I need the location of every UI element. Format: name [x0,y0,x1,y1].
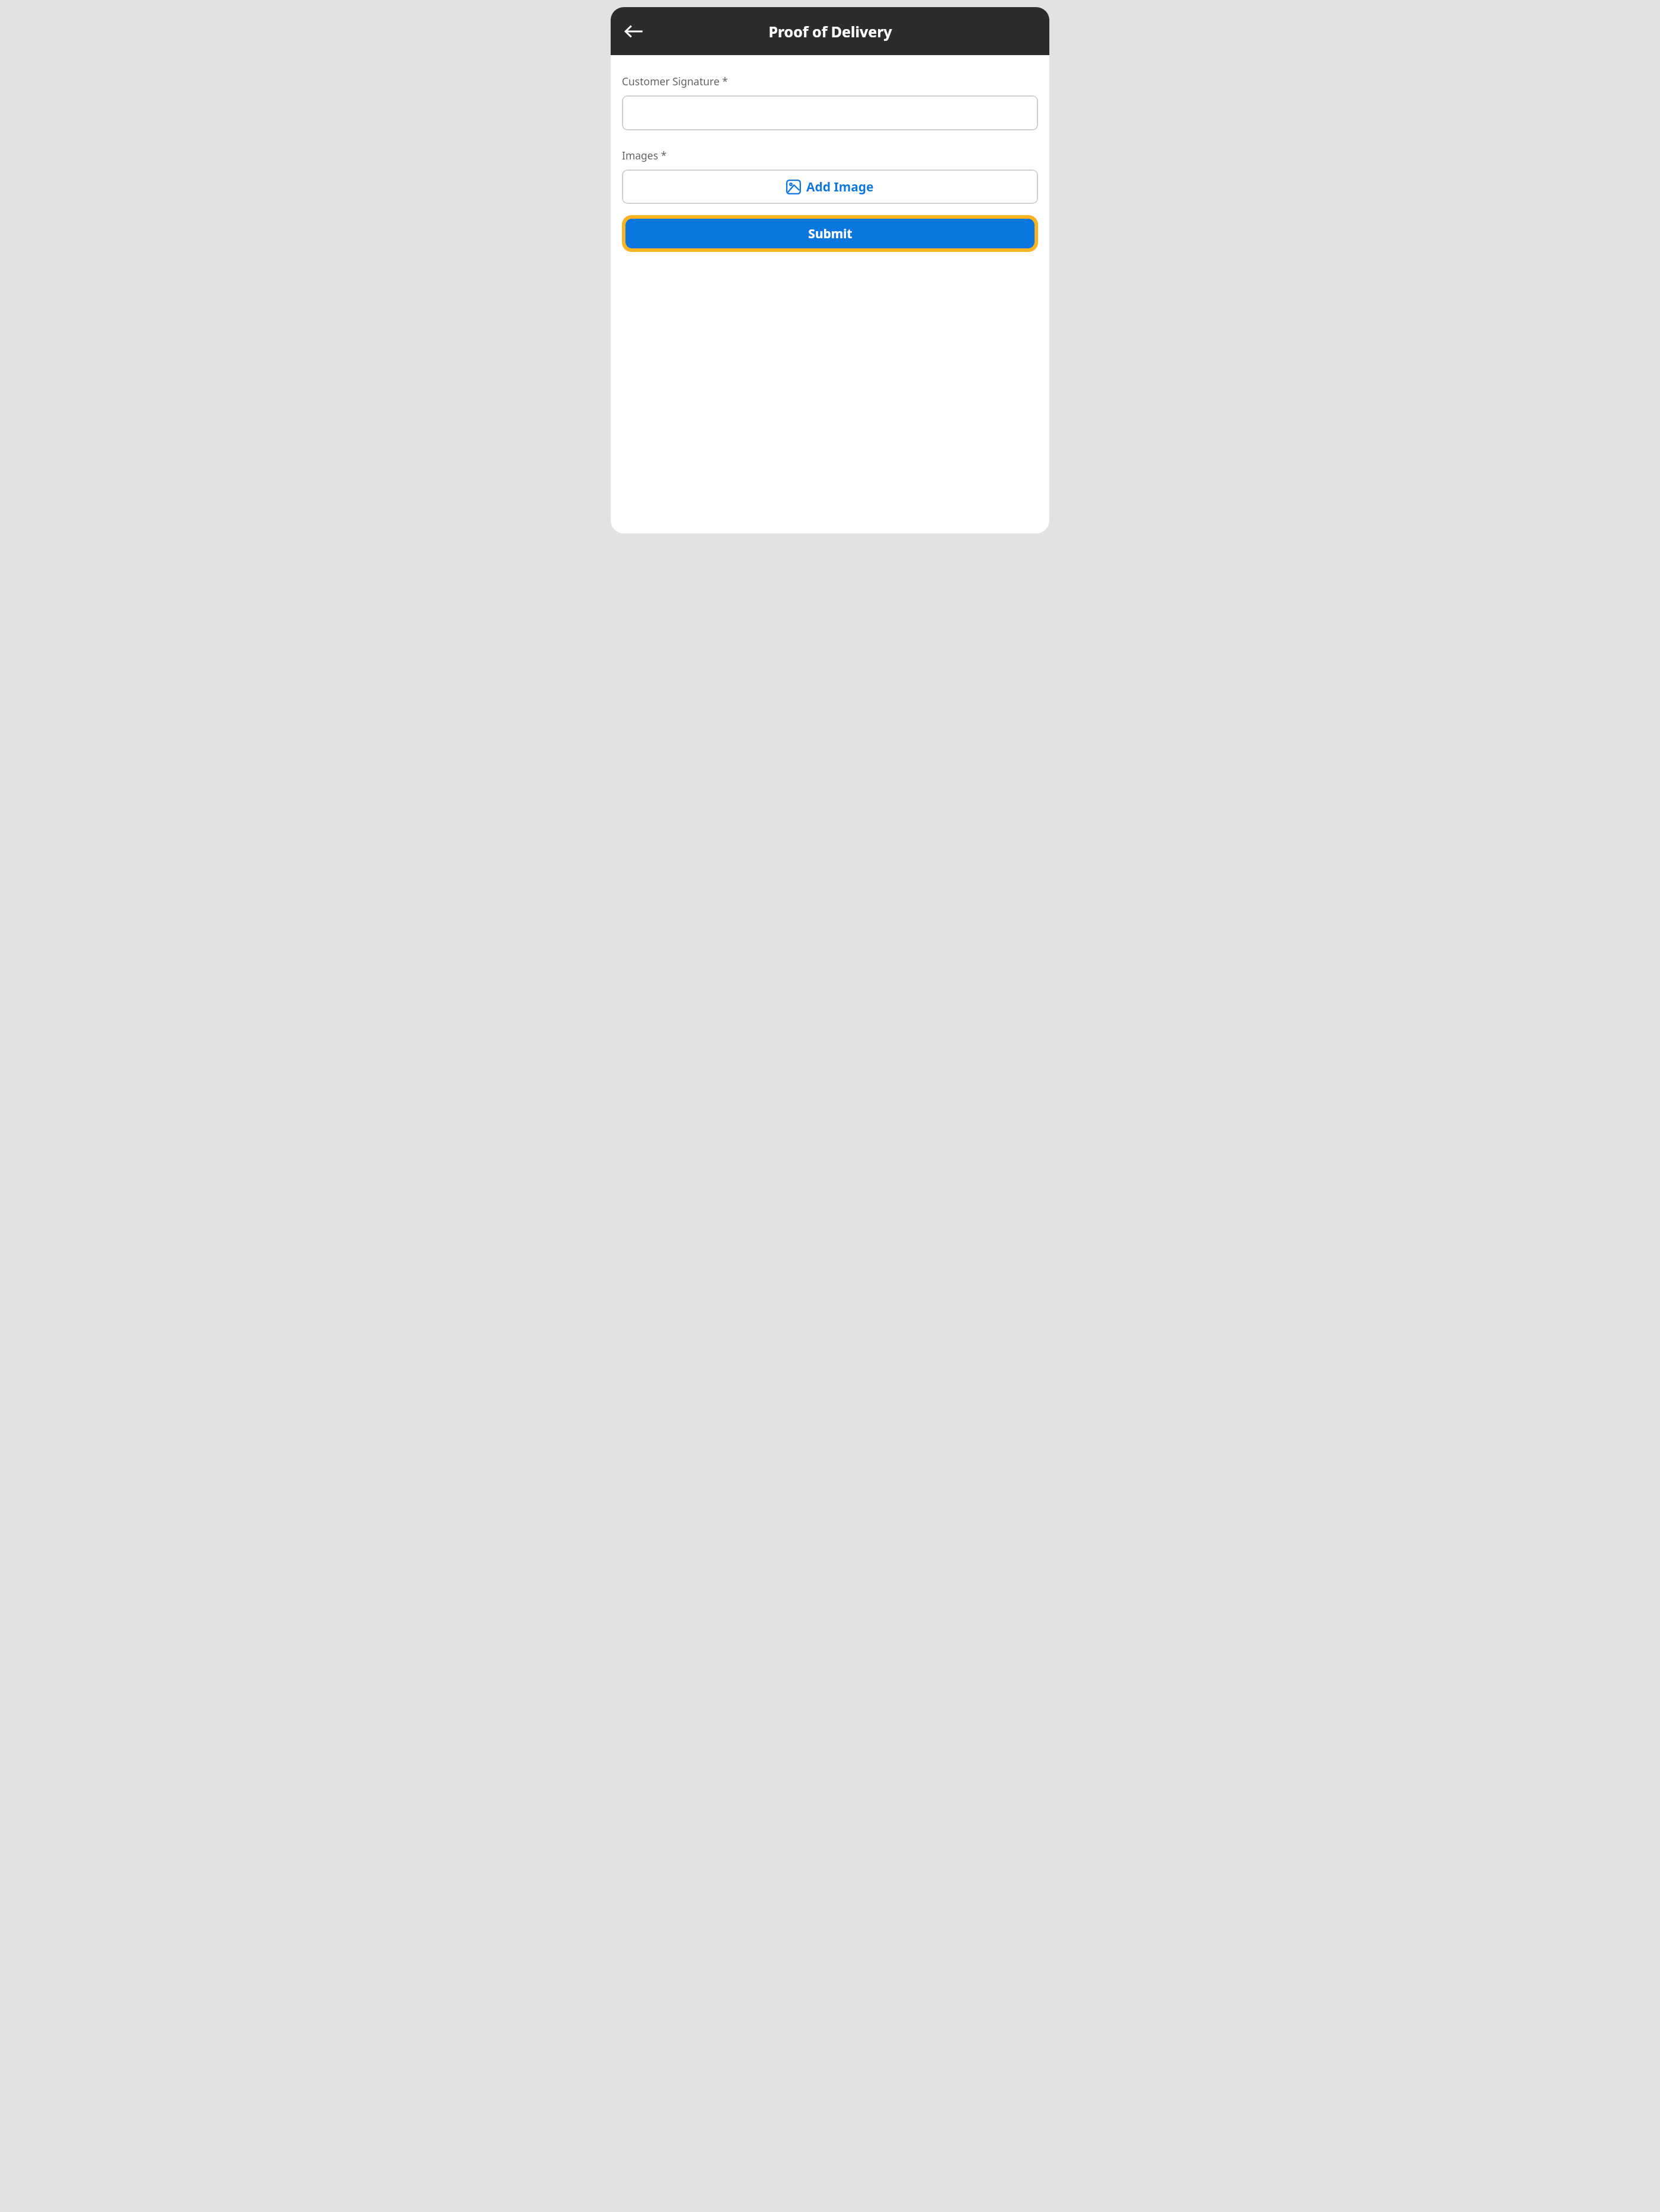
button[interactable]: Add Image [622,170,1038,204]
staticText: Images * [622,148,667,162]
staticText: Add Image [806,178,874,196]
button[interactable]: Submit [625,219,1035,248]
staticText: Customer Signature * [622,74,728,88]
staticText: Submit [808,225,853,242]
button[interactable]: Back [617,14,651,49]
staticText: Proof of Delivery [768,21,892,41]
button[interactable] [622,95,1038,130]
